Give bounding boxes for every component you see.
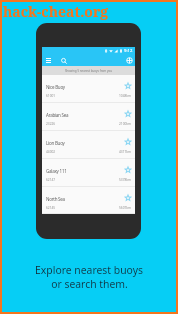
- staticText: 62147: [46, 178, 56, 182]
- staticText: 23226: [46, 122, 56, 126]
- button[interactable]: Arabian Sea: [42, 103, 135, 131]
- staticText: 44002: [46, 150, 56, 154]
- button[interactable]: Lion Buoy: [42, 131, 135, 159]
- staticText: hack-cheat.org: [3, 2, 109, 21]
- staticText: Showing 5 nearest buoys from you: [65, 69, 112, 73]
- button[interactable]: Search: [58, 55, 69, 66]
- button[interactable]: Add buoy: [123, 54, 135, 66]
- button[interactable]: Favorite: [123, 193, 133, 203]
- staticText: Explore nearest buoys: [35, 263, 143, 277]
- staticText: 61001: [46, 94, 56, 98]
- button[interactable]: Favorite: [123, 137, 133, 147]
- staticText: Arabian Sea: [46, 112, 69, 118]
- button[interactable]: Galaxy 111: [42, 159, 135, 187]
- staticText: 9:12: [124, 48, 133, 54]
- button[interactable]: North Sea: [42, 187, 135, 214]
- button[interactable]: Menu: [43, 55, 54, 66]
- staticText: Lion Buoy: [46, 140, 65, 146]
- staticText: 4317km: [119, 150, 131, 154]
- staticText: Galaxy 111: [46, 168, 67, 174]
- staticText: 5607km: [119, 206, 131, 210]
- staticText: 2100km: [119, 122, 131, 126]
- staticText: or search them.: [51, 277, 128, 291]
- staticText: 5378km: [119, 178, 131, 182]
- button[interactable]: Favorite: [123, 109, 133, 119]
- button[interactable]: Nice Buoy: [42, 75, 135, 103]
- button[interactable]: Favorite: [123, 81, 133, 91]
- staticText: 62145: [46, 206, 56, 210]
- staticText: North Sea: [46, 196, 65, 202]
- staticText: 1048km: [119, 94, 131, 98]
- staticText: Nice Buoy: [46, 84, 65, 90]
- button[interactable]: Favorite: [123, 165, 133, 175]
